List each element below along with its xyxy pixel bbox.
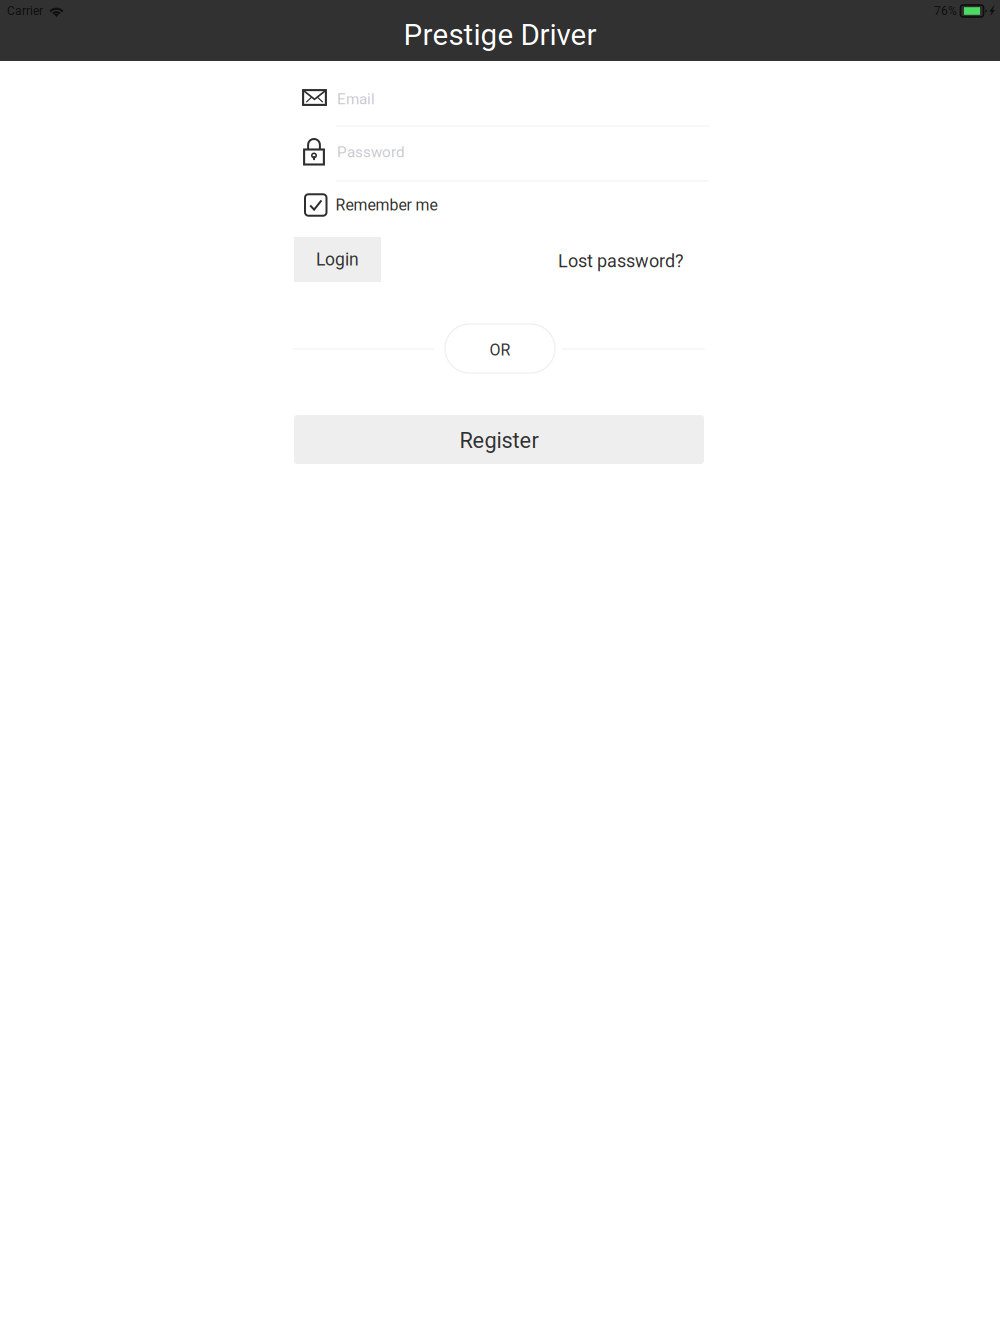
button[interactable]: Lost password? (558, 246, 686, 276)
button[interactable]: Login (294, 237, 381, 282)
staticText: Prestige Driver (403, 18, 596, 52)
button[interactable]: Password (336, 139, 709, 180)
staticText: Password (337, 143, 405, 161)
staticText: Email (337, 90, 375, 108)
staticText: Remember me (335, 196, 437, 214)
staticText: Register (459, 428, 538, 453)
button[interactable]: Email (336, 86, 709, 127)
staticText: Carrier (7, 4, 43, 18)
staticText: OR (489, 341, 510, 359)
staticText: Lost password? (558, 250, 684, 272)
button[interactable]: Remember me (293, 187, 473, 223)
staticText: 76% (934, 4, 957, 18)
staticText: Login (316, 249, 359, 270)
button[interactable]: Register (294, 415, 704, 464)
